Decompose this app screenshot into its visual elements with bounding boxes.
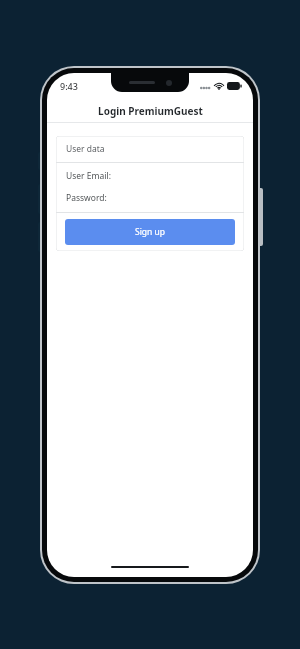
staticText: Password: (66, 192, 107, 204)
staticText: Sign up (135, 226, 166, 238)
staticText: User Email: (66, 170, 111, 182)
button[interactable]: User data (56, 136, 244, 162)
staticText: User data (66, 143, 105, 155)
staticText: Login PremiumGuest (98, 104, 203, 118)
staticText: 9:43 (60, 80, 78, 92)
button[interactable]: Sign up (65, 219, 235, 245)
